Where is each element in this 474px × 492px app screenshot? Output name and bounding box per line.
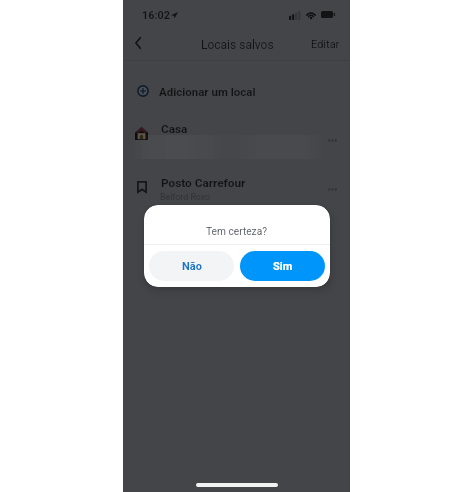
button[interactable]: Mais opcoes [325,133,339,147]
button[interactable]: Adicionar um local [123,70,350,112]
staticText: 16:02 [142,9,170,22]
staticText: Casa [161,122,188,136]
staticText: Posto Carrefour [161,176,246,190]
button[interactable]: Sim [240,251,325,281]
button[interactable]: Voltar [125,30,151,56]
staticText: Sim [273,260,293,273]
staticText: Editar [311,38,340,51]
staticText: Tem certeza? [206,226,268,238]
staticText: Locais salvos [201,38,274,52]
staticText: Belford Roxo [160,192,211,202]
button[interactable]: Posto Carrefour [123,166,350,220]
staticText: Não [182,260,202,273]
button[interactable]: Mais opcoes [325,182,339,196]
button[interactable]: Não [149,251,234,281]
staticText: Adicionar um local [159,85,256,98]
button[interactable]: Casa [123,112,350,166]
button[interactable]: Editar [311,38,340,51]
